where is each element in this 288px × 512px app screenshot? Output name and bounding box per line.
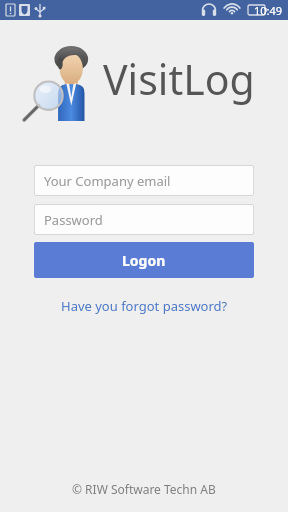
button[interactable]: Logon (34, 242, 254, 278)
staticText: © RIW Software Techn AB (72, 481, 216, 497)
button[interactable]: Password (34, 204, 254, 235)
button[interactable]: Your Company email (34, 165, 254, 196)
other: VisitLog logo (33, 43, 99, 121)
button[interactable]: Have you forgot password? (51, 293, 238, 319)
staticText: Have you forgot password? (61, 297, 228, 315)
staticText: 10:49 (254, 3, 283, 18)
staticText: Password (44, 211, 103, 229)
staticText: Logon (122, 251, 166, 270)
staticText: Your Company email (44, 172, 171, 190)
staticText: VisitLog (103, 51, 255, 107)
